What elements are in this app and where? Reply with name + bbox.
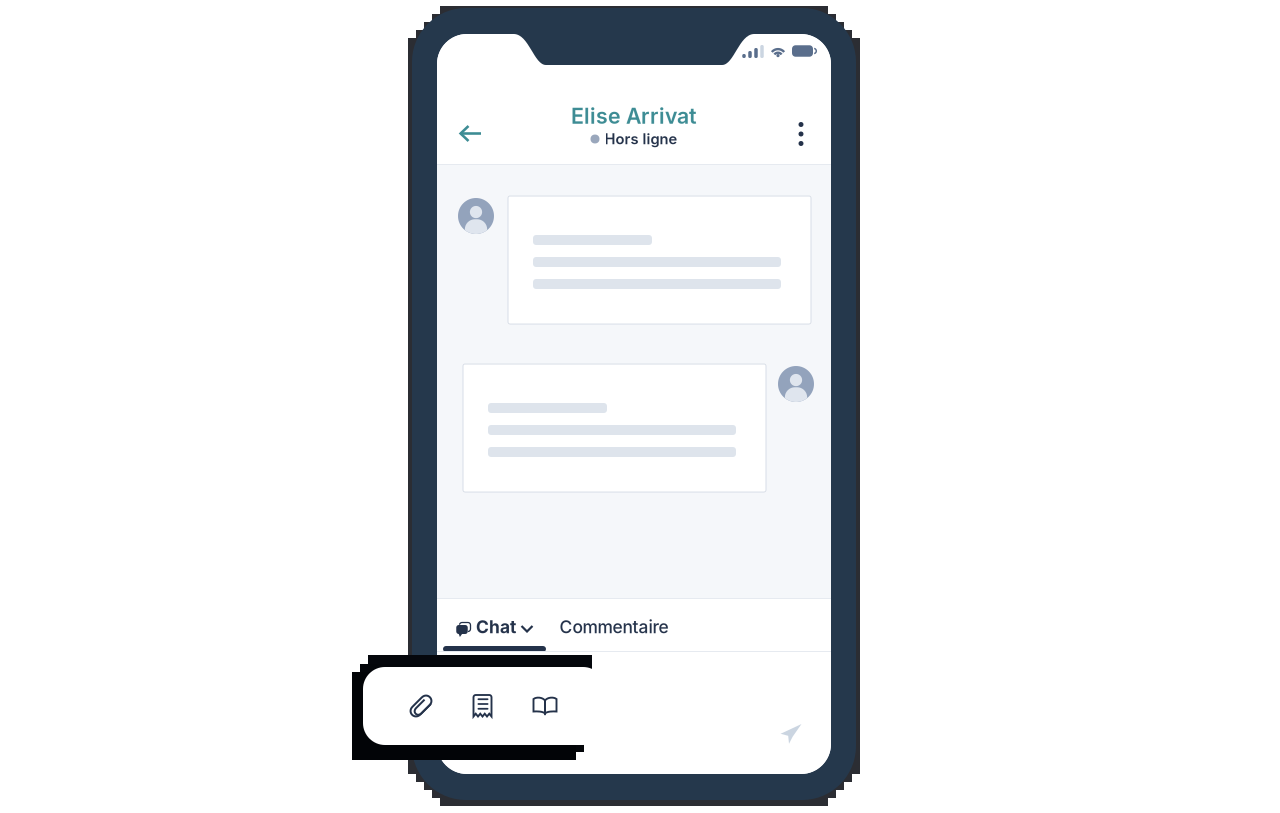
button[interactable]: Knowledge base xyxy=(514,667,576,745)
staticText: Commentaire xyxy=(559,616,668,637)
staticText: Hors ligne xyxy=(604,130,677,148)
staticText: Elise Arrivat xyxy=(571,103,697,129)
button[interactable]: Chat xyxy=(437,34,831,774)
button[interactable]: Back xyxy=(437,34,831,774)
button[interactable]: Invoice xyxy=(452,667,514,745)
button[interactable]: Attach file xyxy=(390,667,452,745)
staticText: Chat xyxy=(476,616,516,637)
button[interactable]: More options xyxy=(437,34,831,774)
button[interactable]: Send xyxy=(437,34,831,774)
button[interactable]: Commentaire xyxy=(437,34,831,774)
